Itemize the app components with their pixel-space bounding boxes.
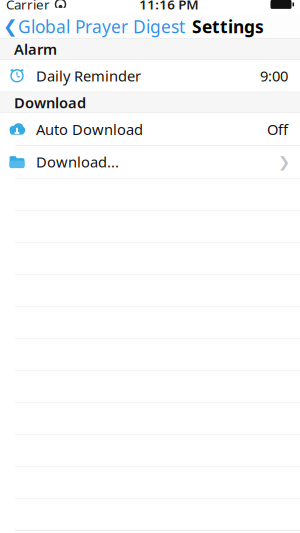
staticText: ❮ bbox=[3, 17, 18, 36]
staticText: Settings bbox=[192, 15, 264, 38]
staticText: 9:00 bbox=[260, 66, 288, 86]
staticText: 11:16 PM bbox=[139, 0, 198, 13]
button[interactable]: ❮ bbox=[0, 12, 185, 41]
staticText: Download bbox=[14, 93, 86, 112]
staticText: Download... bbox=[36, 152, 119, 172]
staticText: Off bbox=[267, 119, 288, 139]
staticText: Alarm bbox=[14, 39, 57, 59]
button[interactable]: Download... bbox=[0, 146, 300, 178]
button[interactable]: Auto Download bbox=[0, 113, 300, 145]
staticText: Auto Download bbox=[36, 119, 143, 139]
staticText: Daily Reminder bbox=[36, 66, 141, 86]
staticText: Carrier bbox=[6, 0, 50, 13]
staticText: ❯ bbox=[278, 154, 290, 170]
button[interactable]: Daily Reminder bbox=[0, 60, 300, 92]
staticText: Global Prayer Digest bbox=[18, 15, 185, 38]
